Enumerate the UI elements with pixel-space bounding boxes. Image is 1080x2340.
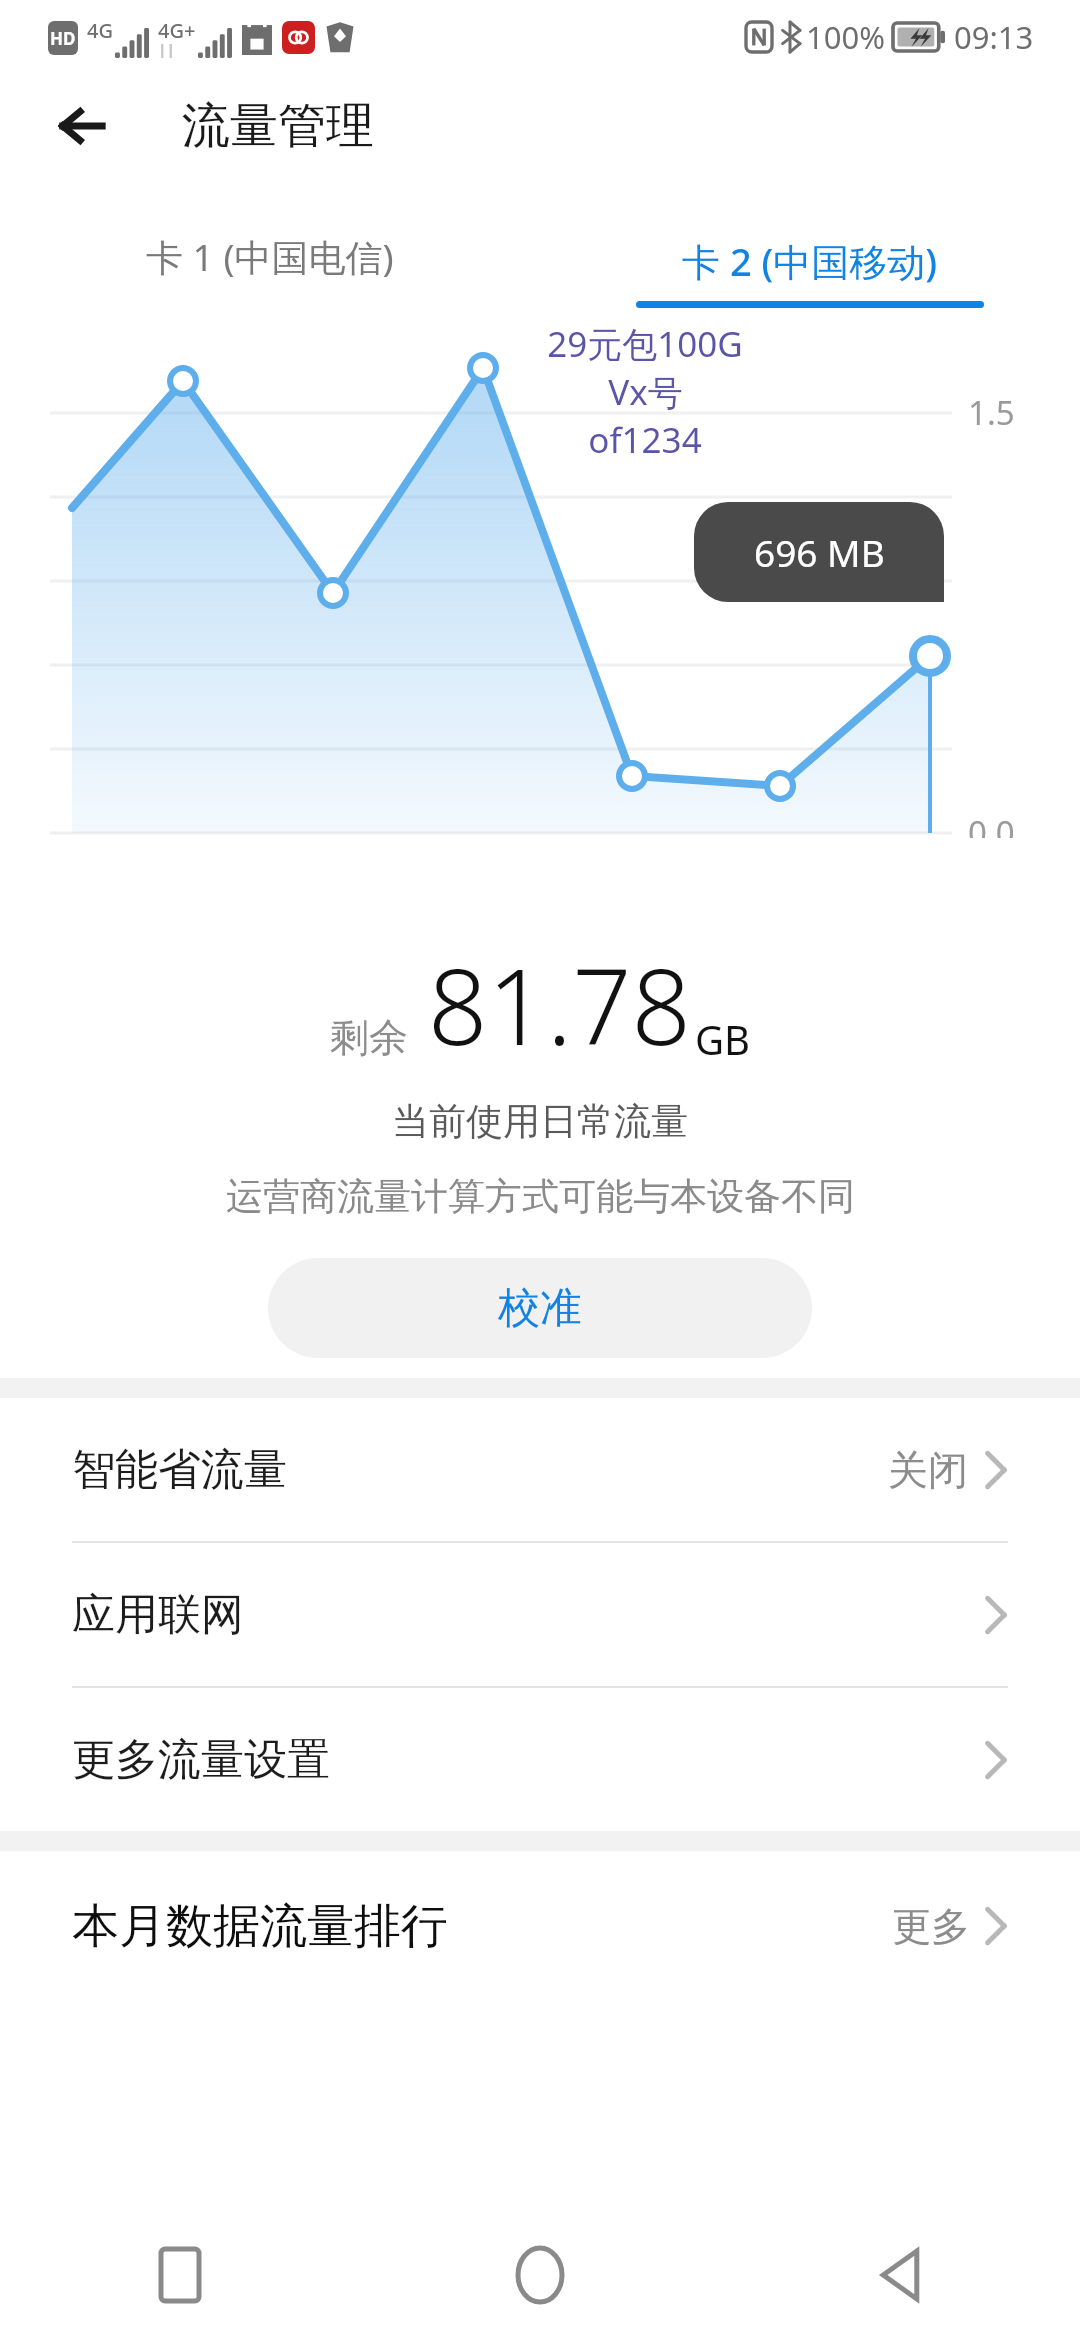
- staticText: 更多流量设置: [72, 1733, 330, 1787]
- staticText: 29元包100G: [547, 320, 743, 368]
- staticText: 本月数据流量排行: [72, 1897, 448, 1956]
- staticText: 卡 1 (中国电信): [146, 231, 394, 282]
- staticText: 696 MB: [754, 527, 885, 577]
- button[interactable]: Back: [720, 2210, 1080, 2340]
- staticText: GB: [695, 1012, 751, 1066]
- staticText: 81.78: [428, 934, 691, 1076]
- staticText: 剩余: [330, 1013, 408, 1062]
- staticText: 流量管理: [182, 96, 374, 156]
- staticText: HD: [50, 27, 76, 50]
- staticText: 0.0: [968, 810, 1015, 838]
- staticText: 1.5: [968, 390, 1015, 435]
- staticText: 运营商流量计算方式可能与本设备不同: [226, 1173, 855, 1220]
- staticText: 校准: [498, 1282, 582, 1335]
- staticText: 卡 2 (中国移动): [682, 235, 938, 287]
- staticText: 关闭: [888, 1445, 968, 1495]
- button[interactable]: Home: [360, 2210, 720, 2340]
- staticText: 当前使用日常流量: [392, 1098, 688, 1145]
- staticText: 更多: [892, 1902, 970, 1951]
- button[interactable]: Back: [44, 88, 120, 164]
- button[interactable]: Recents: [0, 2210, 360, 2340]
- button[interactable]: 卡 1 (中国电信): [0, 178, 540, 308]
- button[interactable]: 校准: [268, 1258, 812, 1358]
- staticText: 智能省流量: [72, 1443, 287, 1497]
- button[interactable]: 更多流量设置: [0, 1688, 1080, 1831]
- button[interactable]: 应用联网: [0, 1543, 1080, 1688]
- staticText: 应用联网: [72, 1588, 244, 1642]
- button[interactable]: 卡 2 (中国移动): [540, 178, 1080, 308]
- button[interactable]: 智能省流量: [0, 1398, 1080, 1543]
- staticText: 4G+: [158, 17, 196, 44]
- button[interactable]: 本月数据流量排行: [0, 1851, 1080, 2001]
- staticText: 100%: [806, 16, 885, 58]
- staticText: of1234: [588, 416, 702, 464]
- staticText: 09:13: [954, 16, 1034, 58]
- staticText: Vx号: [608, 368, 683, 416]
- staticText: 4G: [87, 17, 113, 44]
